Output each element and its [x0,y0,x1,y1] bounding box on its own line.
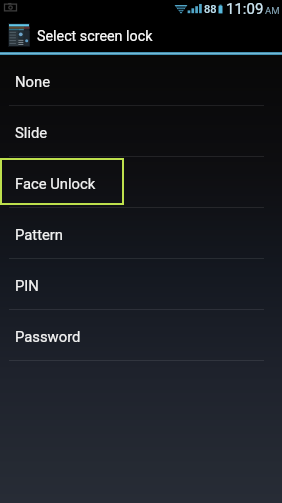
staticText: 11:09 [226,0,264,17]
staticText: Password [15,328,81,345]
button[interactable]: PIN [0,259,282,310]
button[interactable]: None [0,55,282,106]
staticText: 88 [204,3,217,16]
staticText: None [15,73,51,90]
staticText: Face Unlock [15,175,96,192]
other: Screenshot captured [3,1,18,14]
button[interactable]: Slide [0,106,282,157]
button[interactable]: Face Unlock [0,157,282,208]
button[interactable]: Pattern [0,208,282,259]
staticText: PIN [15,277,39,294]
button[interactable]: Select screen lock [0,17,282,52]
staticText: Pattern [15,226,64,243]
staticText: AM [265,5,280,16]
staticText: Select screen lock [37,28,153,45]
button[interactable]: Password [0,310,282,361]
staticText: Slide [15,124,48,141]
